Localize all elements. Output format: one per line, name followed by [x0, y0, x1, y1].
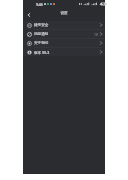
staticText: 设置 [60, 11, 68, 16]
button[interactable]: 消息通知 [23, 30, 105, 38]
staticText: 账号安全 [34, 23, 49, 28]
staticText: 18 [94, 32, 98, 37]
button[interactable]: 关于我们 [23, 39, 105, 47]
staticText: 消息通知 [34, 32, 49, 37]
button[interactable]: 版本 V6.3 [23, 48, 105, 56]
button[interactable]: 账号安全 [23, 21, 105, 29]
staticText: 关于我们 [34, 41, 49, 46]
staticText: 版本 V6.3 [34, 50, 50, 55]
staticText: 9:46 [36, 2, 43, 7]
button[interactable]: Back [24, 10, 33, 19]
